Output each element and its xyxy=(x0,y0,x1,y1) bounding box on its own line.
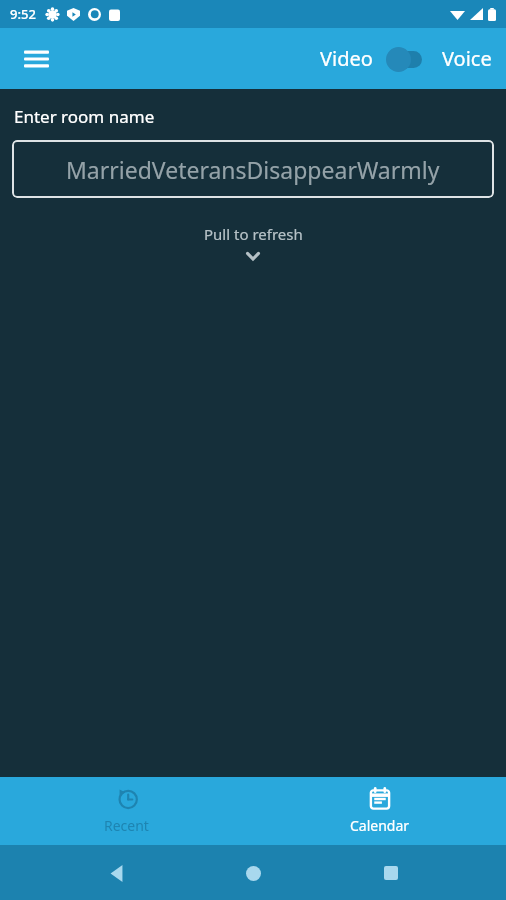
button[interactable]: Toggle video or voice mode xyxy=(386,46,430,72)
button[interactable]: Open navigation menu xyxy=(12,35,60,83)
button[interactable]: Home xyxy=(231,851,275,895)
staticText: Enter room name xyxy=(14,105,155,128)
button[interactable]: Voice xyxy=(442,45,492,72)
button[interactable]: Back xyxy=(94,851,138,895)
staticText: 9:52 xyxy=(10,5,36,23)
staticText: Calendar xyxy=(350,816,410,835)
staticText: MarriedVeteransDisappearWarmly xyxy=(66,154,440,185)
staticText: Pull to refresh xyxy=(204,224,303,244)
staticText: Recent xyxy=(104,816,149,835)
button[interactable]: Calendar xyxy=(253,777,506,845)
button[interactable]: Recent xyxy=(0,777,253,845)
button[interactable]: Recent apps xyxy=(369,851,413,895)
button[interactable]: MarriedVeteransDisappearWarmly xyxy=(12,140,494,198)
button[interactable]: Video xyxy=(320,45,373,72)
